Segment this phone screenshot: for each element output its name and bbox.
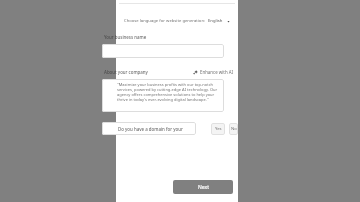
staticText: thrive in today's ever-evolving digital … bbox=[117, 97, 209, 102]
button[interactable]: Next bbox=[173, 180, 233, 194]
button[interactable]: No bbox=[229, 123, 238, 135]
staticText: About your company bbox=[104, 69, 148, 75]
button[interactable]: Do you have a domain for your website? bbox=[102, 122, 196, 135]
staticText: Yes bbox=[215, 126, 222, 132]
staticText: Enhance with AI bbox=[200, 69, 234, 75]
staticText: Do you have a domain for your website? bbox=[118, 126, 196, 132]
button[interactable] bbox=[102, 44, 224, 58]
other: AI sparkle bbox=[193, 70, 198, 75]
staticText: English bbox=[208, 18, 223, 24]
staticText: Next bbox=[198, 184, 209, 191]
staticText: No bbox=[231, 126, 237, 132]
staticText: services, powered by cutting-edge AI tec… bbox=[117, 87, 221, 92]
button[interactable]: "Maximize your business profits with our… bbox=[102, 79, 224, 112]
button[interactable]: AI sparkle bbox=[191, 68, 236, 76]
staticText: Choose language for website generation: bbox=[124, 18, 206, 24]
button[interactable]: Choose language for website generation: bbox=[121, 16, 233, 26]
button[interactable]: Yes bbox=[211, 123, 225, 135]
staticText: "Maximize your business profits with our… bbox=[117, 82, 221, 87]
staticText: Your business name bbox=[104, 34, 147, 40]
staticText: agency offers comprehensive solutions to… bbox=[117, 92, 221, 97]
other: Open language menu bbox=[227, 19, 230, 24]
